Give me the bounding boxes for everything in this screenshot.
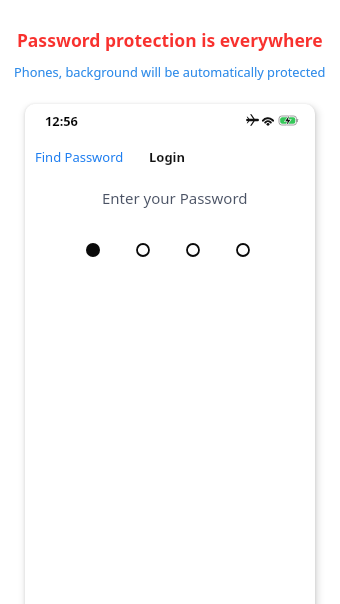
staticText: Password protection is everywhere	[17, 28, 323, 52]
staticText: Phones, background will be automatically…	[14, 63, 326, 80]
staticText: 12:56	[45, 112, 78, 128]
button[interactable]: Login	[149, 148, 185, 165]
button[interactable]: Find Password	[35, 148, 124, 165]
staticText: Enter your Password	[102, 188, 248, 208]
